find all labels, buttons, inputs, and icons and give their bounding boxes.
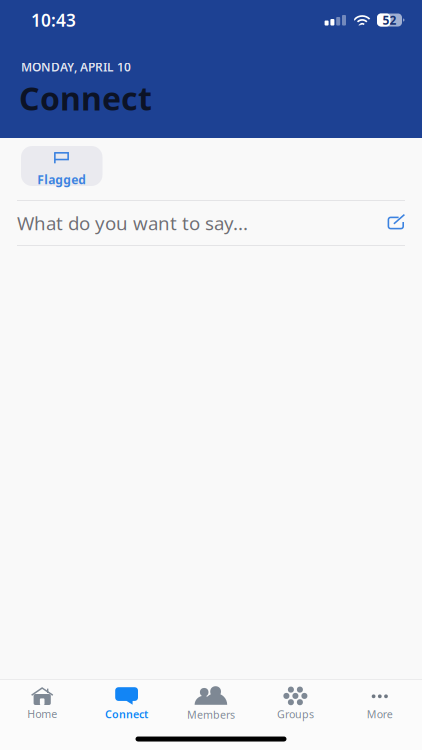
staticText: Connect [19, 77, 152, 119]
staticText: Connect [105, 707, 148, 721]
button[interactable]: Groups [253, 682, 338, 726]
staticText: 52 [382, 12, 396, 28]
staticText: 10:43 [31, 8, 76, 31]
button[interactable]: Home [0, 682, 84, 726]
staticText: Flagged [37, 172, 86, 188]
staticText: More [367, 707, 393, 721]
staticText: Members [187, 707, 235, 722]
staticText: Groups [277, 707, 314, 721]
staticText: Home [27, 707, 57, 721]
button[interactable]: Flagged [21, 146, 102, 186]
staticText: What do you want to say... [17, 211, 248, 235]
button[interactable]: Connect [84, 682, 169, 726]
button[interactable]: More [338, 682, 422, 726]
button[interactable]: Members [169, 682, 253, 726]
button[interactable]: What do you want to say... [0, 201, 422, 245]
staticText: MONDAY, APRIL 10 [21, 59, 131, 75]
